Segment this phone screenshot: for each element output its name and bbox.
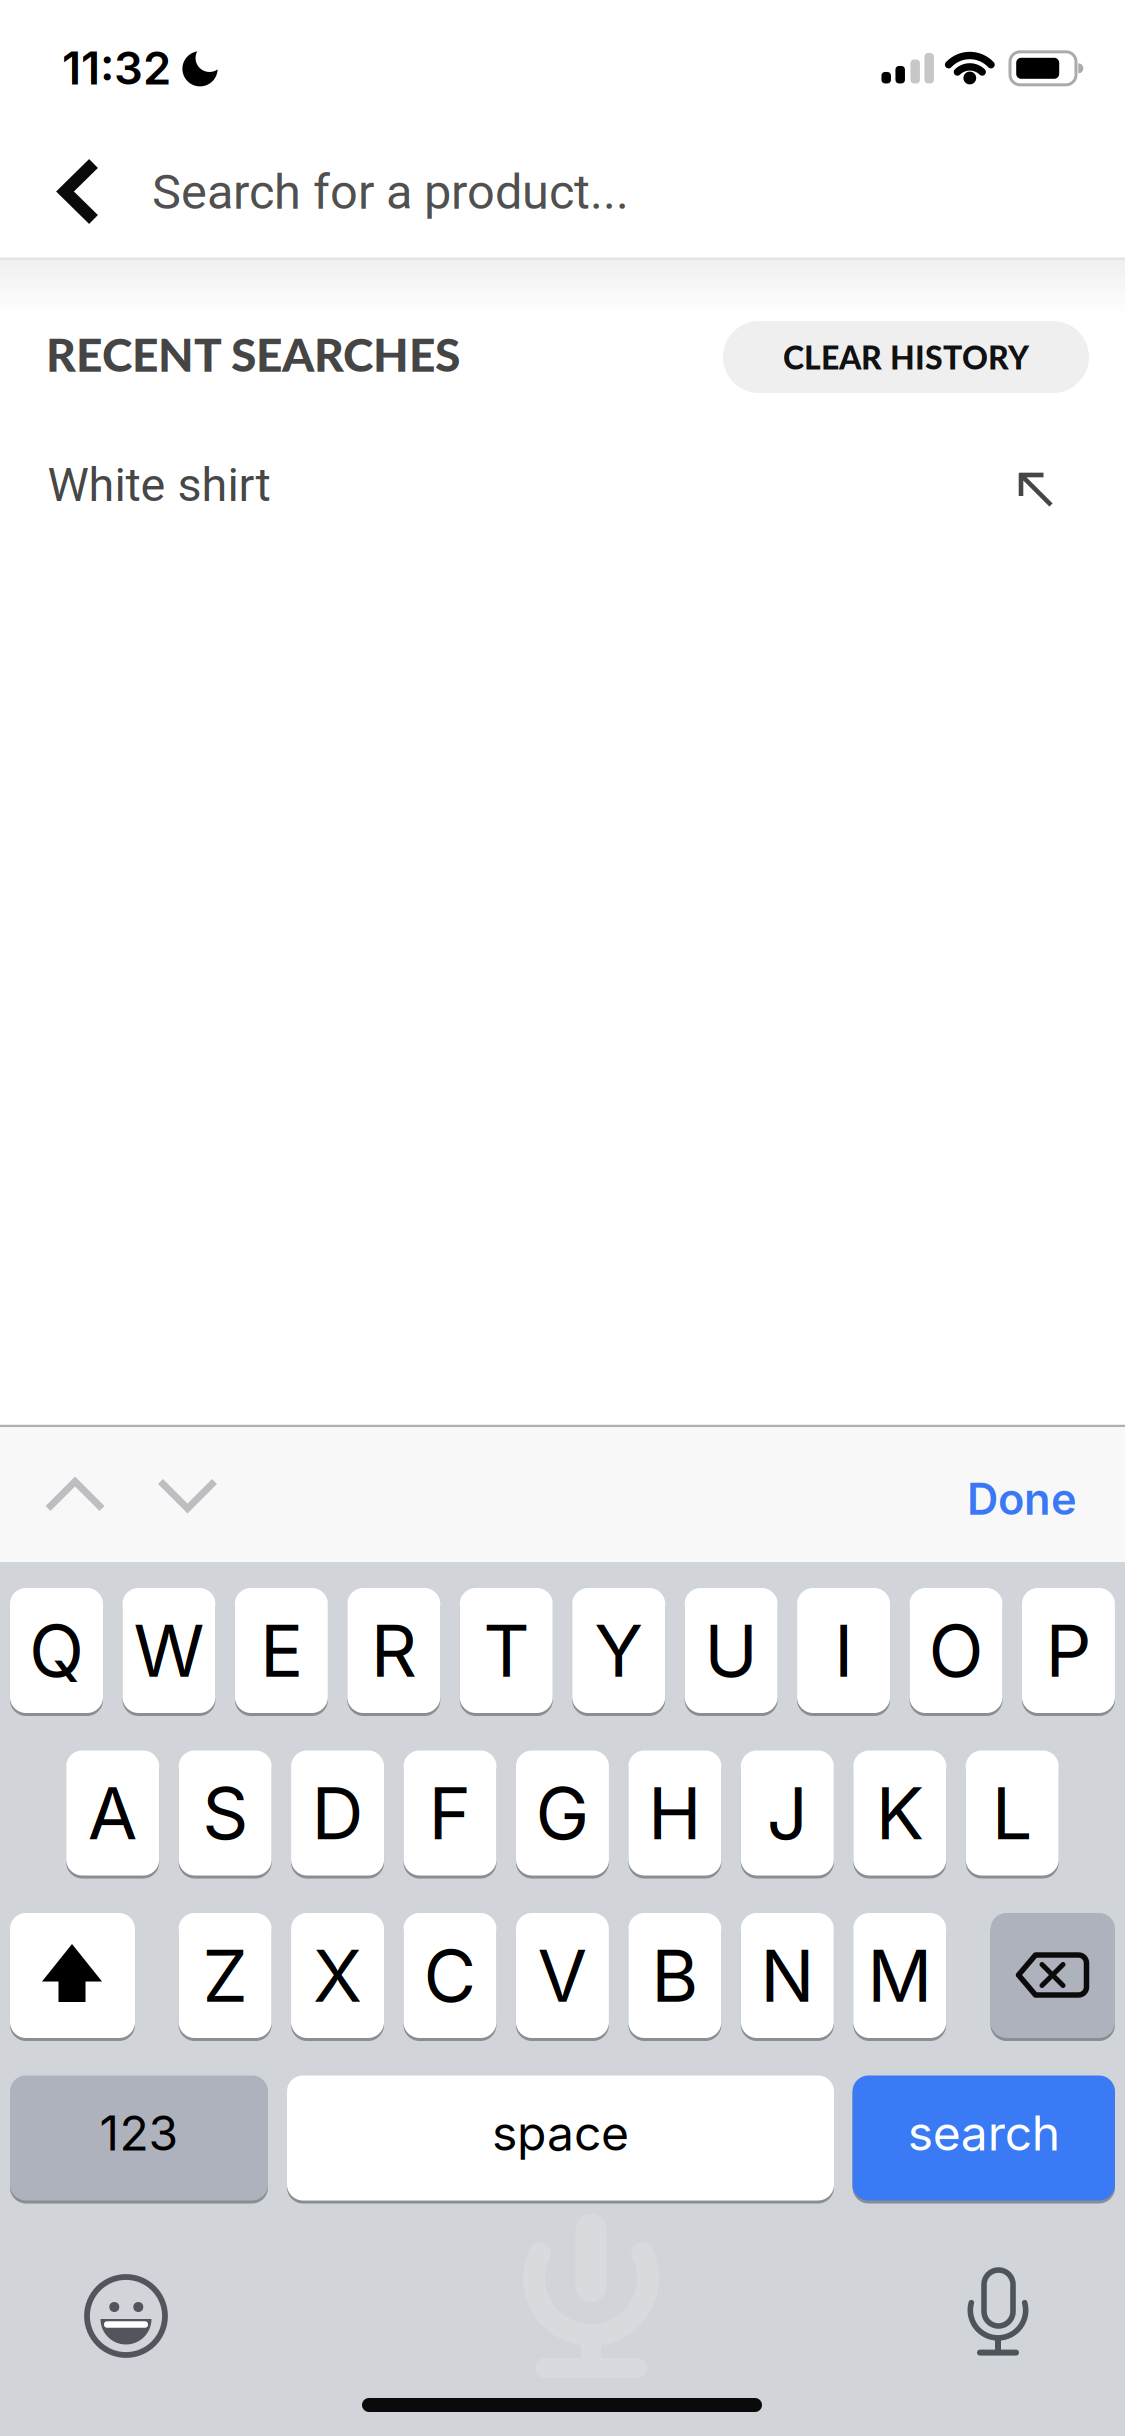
button[interactable]: I — [797, 1588, 890, 1713]
staticText: Done — [967, 1473, 1077, 1525]
button[interactable]: Emoji — [76, 2266, 176, 2366]
staticText: Y — [594, 1607, 643, 1694]
staticText: T — [483, 1607, 529, 1694]
button[interactable]: R — [347, 1588, 440, 1713]
button[interactable]: X — [291, 1913, 384, 2038]
staticText: space — [492, 2104, 629, 2162]
staticText: Search for a product... — [152, 163, 629, 220]
staticText: I — [834, 1607, 853, 1694]
button[interactable]: Z — [179, 1913, 272, 2038]
button[interactable]: CLEAR HISTORY — [723, 321, 1089, 393]
button[interactable]: E — [235, 1588, 328, 1713]
staticText: White shirt — [47, 458, 270, 512]
button[interactable]: S — [179, 1750, 272, 1875]
staticText: K — [876, 1769, 924, 1856]
staticText: Z — [203, 1932, 248, 2019]
staticText: F — [428, 1769, 471, 1856]
button[interactable]: F — [403, 1750, 496, 1875]
staticText: A — [88, 1769, 138, 1856]
button[interactable]: U — [685, 1588, 778, 1713]
button[interactable]: N — [741, 1913, 834, 2038]
staticText: Q — [29, 1607, 84, 1694]
staticText: M — [867, 1932, 932, 2019]
button[interactable]: Delete — [990, 1913, 1115, 2038]
button[interactable]: Y — [572, 1588, 665, 1713]
staticText: search — [908, 2104, 1060, 2162]
staticText: H — [648, 1769, 702, 1856]
staticText: O — [928, 1607, 983, 1694]
staticText: V — [537, 1932, 587, 2019]
button[interactable]: V — [516, 1913, 609, 2038]
button[interactable]: P — [1022, 1588, 1115, 1713]
button[interactable]: K — [853, 1750, 946, 1875]
staticText: W — [133, 1607, 204, 1694]
staticText: J — [767, 1769, 808, 1856]
button[interactable]: Q — [10, 1588, 103, 1713]
staticText: S — [202, 1769, 248, 1856]
staticText: X — [313, 1932, 362, 2019]
button[interactable]: D — [291, 1750, 384, 1875]
button[interactable]: White shirt — [47, 435, 1052, 535]
button[interactable]: search — [852, 2075, 1115, 2200]
button[interactable]: space — [287, 2075, 834, 2200]
button[interactable]: H — [628, 1750, 721, 1875]
button[interactable]: Previous field — [44, 1477, 105, 1513]
staticText: G — [535, 1769, 589, 1856]
staticText: L — [992, 1769, 1033, 1856]
button[interactable]: T — [460, 1588, 553, 1713]
staticText: B — [651, 1932, 698, 2019]
staticText: U — [704, 1607, 758, 1694]
button[interactable]: M — [853, 1913, 946, 2038]
button[interactable]: Search for a product... — [152, 163, 1113, 220]
button[interactable]: Shift — [10, 1913, 135, 2038]
button[interactable]: L — [966, 1750, 1059, 1875]
button[interactable]: Done — [967, 1473, 1077, 1525]
staticText: RECENT SEARCHES — [46, 326, 460, 382]
button[interactable]: Back — [58, 159, 100, 223]
staticText: R — [371, 1607, 417, 1694]
button[interactable]: B — [628, 1913, 721, 2038]
button[interactable]: 123 — [10, 2075, 268, 2200]
staticText: P — [1045, 1607, 1091, 1694]
button[interactable]: A — [66, 1750, 159, 1875]
staticText: N — [760, 1932, 814, 2019]
staticText: D — [312, 1769, 364, 1856]
staticText: CLEAR HISTORY — [783, 338, 1029, 376]
button[interactable]: G — [516, 1750, 609, 1875]
button[interactable]: C — [403, 1913, 496, 2038]
staticText: 11:32 — [62, 41, 171, 95]
staticText: C — [423, 1932, 476, 2019]
staticText: 123 — [99, 2104, 178, 2162]
button[interactable]: O — [909, 1588, 1002, 1713]
button[interactable]: W — [122, 1588, 215, 1713]
button[interactable]: Dictation — [958, 2263, 1038, 2363]
staticText: E — [260, 1607, 303, 1694]
button[interactable]: Next field — [157, 1477, 218, 1513]
button[interactable]: J — [741, 1750, 834, 1875]
